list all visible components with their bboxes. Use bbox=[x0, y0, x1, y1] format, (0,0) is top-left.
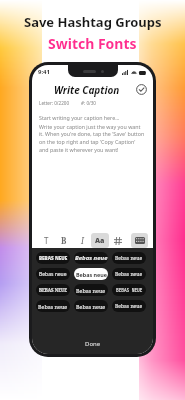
staticText: Bebas neue bbox=[76, 271, 107, 278]
button[interactable]: T bbox=[37, 233, 55, 248]
staticText: BEBAS NEUE bbox=[39, 255, 68, 261]
button[interactable]: Bebas neue bbox=[112, 252, 146, 264]
staticText: Bebas neue bbox=[38, 303, 68, 310]
button[interactable]: Bebas neue bbox=[36, 300, 70, 312]
staticText: Bebas neue bbox=[76, 287, 106, 294]
button[interactable]: Save caption bbox=[136, 84, 147, 95]
button[interactable]: Keyboard bbox=[131, 233, 148, 248]
staticText: B bbox=[61, 235, 67, 246]
staticText: Bebas neue bbox=[115, 303, 143, 310]
staticText: Letter: 0/2200 bbox=[39, 100, 70, 106]
button[interactable]: I bbox=[73, 233, 91, 248]
staticText: Bebas neue bbox=[39, 271, 67, 278]
staticText: Switch Fonts bbox=[48, 34, 137, 53]
button[interactable]: # bbox=[109, 233, 127, 248]
staticText: Bebas neue bbox=[115, 271, 143, 278]
staticText: Bebas neue bbox=[76, 303, 106, 310]
staticText: 9:41 bbox=[38, 68, 50, 76]
button[interactable]: Bebas neue bbox=[112, 300, 146, 312]
button[interactable]: Done bbox=[36, 337, 149, 350]
staticText: Save Hashtag Groups bbox=[24, 13, 162, 31]
button[interactable]: Bebas neue bbox=[74, 268, 108, 280]
staticText: #: 0/30 bbox=[81, 100, 96, 106]
staticText: I bbox=[81, 235, 84, 246]
staticText: BEBAS NEUE bbox=[116, 287, 143, 293]
button[interactable]: Bebas neue bbox=[36, 268, 70, 280]
button[interactable]: Aa bbox=[91, 233, 109, 248]
staticText: Write your caption just the way you want… bbox=[39, 123, 146, 154]
staticText: Bebas neue bbox=[115, 255, 143, 262]
staticText: T bbox=[44, 235, 49, 246]
staticText: Done bbox=[85, 340, 101, 348]
button[interactable]: Bebas neue bbox=[74, 284, 108, 296]
staticText: BEBAS NEUE bbox=[39, 287, 68, 293]
button[interactable]: Bebas neue bbox=[74, 252, 108, 264]
button[interactable]: BEBAS NEUE bbox=[112, 284, 146, 296]
staticText: Bebas neue bbox=[75, 254, 108, 262]
button[interactable]: Bebas neue bbox=[74, 300, 108, 312]
staticText: Write Caption bbox=[54, 83, 120, 97]
button[interactable]: Bebas neue bbox=[112, 268, 146, 280]
staticText: Aa bbox=[95, 236, 105, 246]
button[interactable]: B bbox=[55, 233, 73, 248]
staticText: Start writing your caption here... bbox=[39, 114, 120, 121]
button[interactable]: BEBAS NEUE bbox=[36, 252, 70, 264]
button[interactable]: BEBAS NEUE bbox=[36, 284, 70, 296]
